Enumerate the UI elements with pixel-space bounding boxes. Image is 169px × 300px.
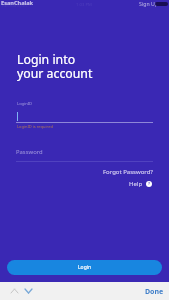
button[interactable]: Previous field bbox=[5, 282, 24, 300]
button[interactable]: Login bbox=[7, 260, 162, 275]
staticText: Login bbox=[78, 264, 92, 271]
staticText: Done bbox=[145, 287, 164, 297]
staticText: Login into your account bbox=[17, 51, 93, 82]
staticText: ? bbox=[148, 181, 150, 187]
staticText: esan chalak logistics bbox=[2, 4, 27, 8]
staticText: LoginID bbox=[17, 101, 33, 107]
staticText: Forgot Password? bbox=[103, 168, 153, 176]
button[interactable]: Help bbox=[129, 180, 152, 188]
staticText: Help bbox=[129, 180, 143, 188]
staticText: EsanChalak bbox=[1, 0, 33, 7]
staticText: LoginID is required bbox=[17, 124, 53, 129]
button[interactable]: Done bbox=[145, 286, 169, 297]
staticText: 1:03 PM bbox=[76, 2, 92, 8]
staticText: Password bbox=[16, 148, 43, 156]
staticText: Sign Up bbox=[139, 0, 158, 7]
button[interactable]: Next field bbox=[19, 282, 38, 300]
button[interactable]: Forgot Password? bbox=[103, 168, 153, 176]
